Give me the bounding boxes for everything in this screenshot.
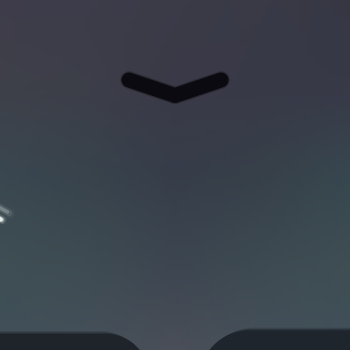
button[interactable]: Left control — [0, 0, 350, 350]
button[interactable]: Right control — [0, 0, 350, 350]
